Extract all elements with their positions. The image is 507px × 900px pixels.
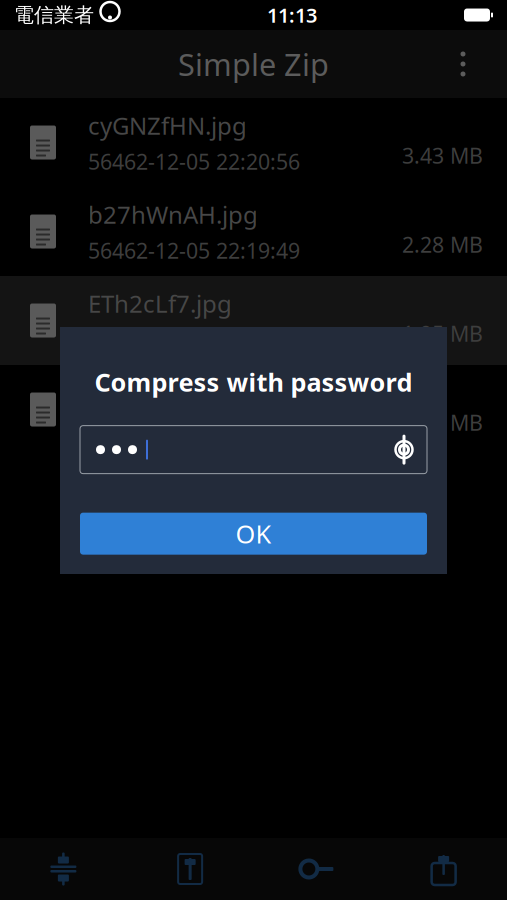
button[interactable]: Compress: [0, 838, 127, 900]
button[interactable]: OK: [80, 513, 427, 555]
staticText: 1.95 MB: [402, 319, 483, 348]
staticText: 56462-12-05 22:19:49: [88, 236, 300, 265]
staticText: Simple Zip: [178, 44, 329, 84]
button[interactable]: More options: [441, 36, 485, 92]
staticText: 11:13: [267, 2, 317, 28]
button[interactable]: Share: [380, 838, 507, 900]
button[interactable]: cyGNZfHN.jpg: [0, 98, 507, 187]
staticText: 56462-12-05 22:17:02: [88, 414, 300, 443]
button[interactable]: Kq8vRnTb.jpg: [0, 365, 507, 454]
staticText: 56462-12-05 22:18:33: [88, 325, 300, 354]
staticText: 2.67 MB: [402, 408, 483, 437]
staticText: ETh2cLf7.jpg: [88, 287, 232, 319]
staticText: b27hWnAH.jpg: [88, 198, 258, 230]
button[interactable]: Extract: [127, 838, 254, 900]
staticText: Kq8vRnTb.jpg: [88, 376, 244, 408]
staticText: 3.43 MB: [402, 141, 483, 170]
button[interactable]: ETh2cLf7.jpg: [0, 276, 507, 365]
staticText: 2.28 MB: [402, 230, 483, 259]
button[interactable]: Show password: [381, 427, 427, 473]
staticText: 電信業者: [14, 3, 94, 27]
staticText: 56462-12-05 22:20:56: [88, 147, 300, 176]
staticText: cyGNZfHN.jpg: [88, 109, 247, 141]
staticText: OK: [235, 517, 271, 550]
button[interactable]: Password: [253, 838, 380, 900]
staticText: Compress with password: [94, 365, 412, 399]
button[interactable]: b27hWnAH.jpg: [0, 187, 507, 276]
